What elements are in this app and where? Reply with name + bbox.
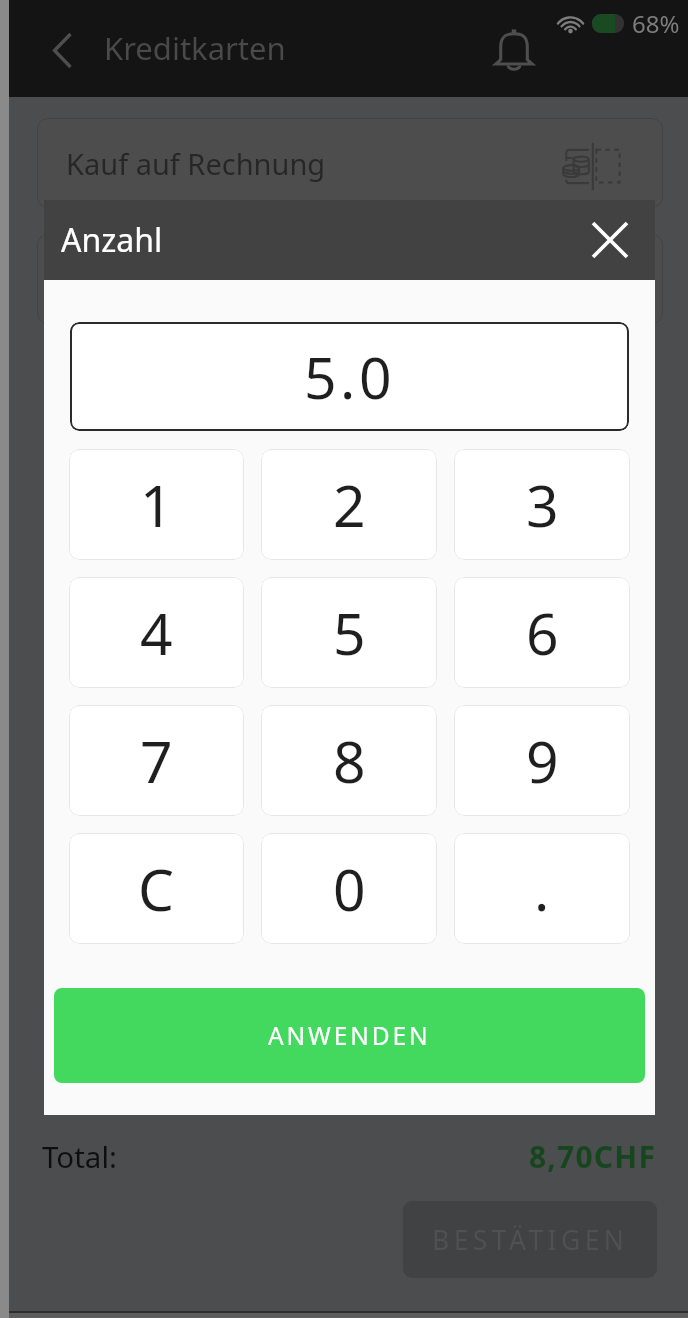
button[interactable]: Notifications (490, 25, 538, 73)
staticText: 1 (140, 466, 173, 544)
button[interactable]: 4 (69, 577, 244, 688)
staticText: 68% (632, 7, 680, 40)
staticText: 0 (333, 850, 366, 928)
button[interactable]: ANWENDEN (54, 988, 645, 1083)
button[interactable]: BESTÄTIGEN (403, 1201, 657, 1278)
button[interactable]: 7 (69, 705, 244, 816)
staticText: 8 (333, 722, 366, 800)
button[interactable]: 5.0 (70, 322, 629, 431)
staticText: C (138, 850, 175, 928)
button[interactable]: C (69, 833, 244, 944)
staticText: ANWENDEN (268, 1019, 431, 1052)
button[interactable]: 9 (454, 705, 630, 816)
button[interactable]: . (454, 833, 630, 944)
button[interactable] (37, 234, 663, 324)
staticText: 2 (333, 466, 366, 544)
staticText: Total: (42, 1136, 117, 1176)
button[interactable]: 2 (261, 449, 437, 560)
staticText: 5 (333, 594, 366, 672)
staticText: Anzahl (61, 218, 163, 262)
staticText: Kauf auf Rechnung (66, 144, 326, 183)
button[interactable]: Kauf auf Rechnung (37, 118, 663, 208)
staticText: 9 (526, 722, 559, 800)
staticText: Kreditkarten (104, 27, 286, 69)
staticText: 8,70CHF (529, 1136, 657, 1177)
button[interactable]: Close (588, 218, 632, 262)
button[interactable]: 5 (261, 577, 437, 688)
staticText: BESTÄTIGEN (432, 1222, 629, 1258)
button[interactable]: Back (38, 26, 86, 74)
staticText: 7 (140, 722, 173, 800)
button[interactable]: 3 (454, 449, 630, 560)
button[interactable]: 0 (261, 833, 437, 944)
button[interactable]: 8 (261, 705, 437, 816)
button[interactable]: 6 (454, 577, 630, 688)
staticText: 4 (140, 594, 173, 672)
staticText: 6 (526, 594, 559, 672)
staticText: . (534, 850, 550, 928)
button[interactable]: 1 (69, 449, 244, 560)
staticText: 5.0 (304, 338, 395, 416)
staticText: 3 (526, 466, 559, 544)
